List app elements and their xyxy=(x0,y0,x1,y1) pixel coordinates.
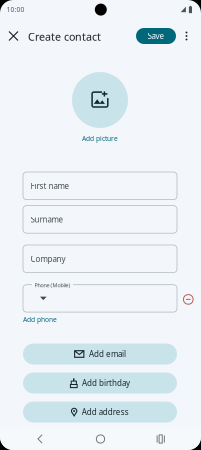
staticText: Company xyxy=(30,253,65,264)
button[interactable]: Close xyxy=(2,25,24,47)
staticText: First name xyxy=(30,180,69,191)
button[interactable]: Home xyxy=(80,428,120,450)
button[interactable]: Save xyxy=(136,28,176,44)
staticText: Create contact xyxy=(28,29,101,44)
button[interactable]: Recent apps xyxy=(141,428,181,450)
staticText: Phone (Mobile) xyxy=(34,282,70,289)
button[interactable]: Surname xyxy=(23,206,177,233)
button[interactable]: Add birthday xyxy=(23,372,177,393)
button[interactable]: Add address xyxy=(23,401,177,422)
button[interactable]: Remove phone xyxy=(180,291,196,307)
button[interactable]: Back xyxy=(20,428,60,450)
staticText: Add picture xyxy=(82,134,118,143)
button[interactable]: Add email xyxy=(23,343,177,364)
button[interactable]: Add picture xyxy=(70,133,130,144)
button[interactable]: Add picture xyxy=(72,72,128,128)
staticText: Add phone xyxy=(23,315,57,324)
button[interactable]: Phone type xyxy=(23,285,177,312)
button[interactable]: Add phone xyxy=(23,313,63,325)
staticText: Add birthday xyxy=(82,378,130,388)
staticText: Add address xyxy=(82,407,129,417)
button[interactable]: More options xyxy=(178,26,194,46)
staticText: 10:00 xyxy=(6,5,24,14)
staticText: Save xyxy=(147,31,164,41)
staticText: Surname xyxy=(30,214,63,225)
button[interactable]: First name xyxy=(23,172,177,200)
staticText: Add email xyxy=(89,349,126,359)
button[interactable]: Company xyxy=(23,245,177,273)
